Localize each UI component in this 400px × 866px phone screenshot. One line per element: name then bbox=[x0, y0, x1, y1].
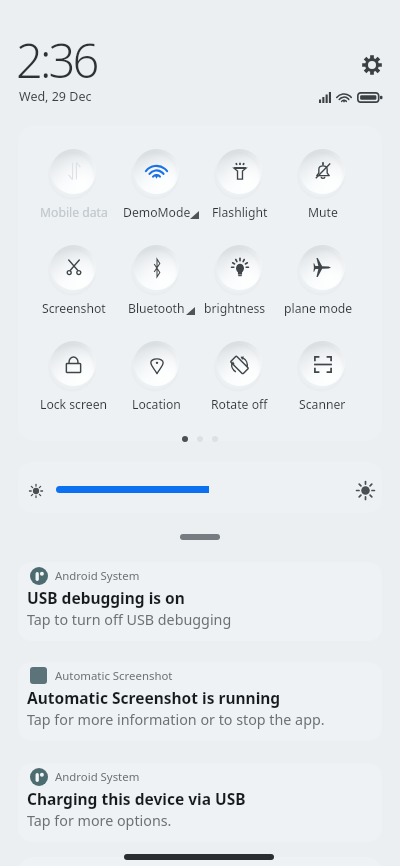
button[interactable]: Rotate off bbox=[198, 338, 281, 413]
staticText: Rotate off bbox=[211, 396, 268, 413]
button[interactable]: Scanner bbox=[281, 338, 364, 413]
button[interactable]: Android System bbox=[18, 763, 382, 842]
staticText: Android System bbox=[55, 568, 140, 584]
staticText: Lock screen bbox=[40, 396, 108, 413]
staticText: Charging this device via USB bbox=[27, 788, 246, 809]
button[interactable]: Automatic Screenshot bbox=[18, 662, 382, 741]
button[interactable]: Mute bbox=[281, 146, 364, 221]
staticText: plane mode bbox=[284, 300, 353, 317]
button[interactable]: Location bbox=[115, 338, 198, 413]
staticText: DemoMode bbox=[123, 204, 191, 221]
staticText: Bluetooth bbox=[128, 300, 185, 317]
button[interactable]: Lock screen bbox=[32, 338, 115, 413]
staticText: Tap for more information or to stop the … bbox=[27, 710, 325, 729]
staticText: Flashlight bbox=[212, 204, 268, 221]
button[interactable]: brightness bbox=[198, 242, 281, 317]
staticText: Tap for more options. bbox=[27, 811, 172, 830]
staticText: Screenshot bbox=[42, 300, 106, 317]
staticText: Location bbox=[132, 396, 181, 413]
staticText: Android System bbox=[55, 769, 140, 785]
staticText: Tap to turn off USB debugging bbox=[27, 610, 232, 629]
staticText: Automatic Screenshot is running bbox=[27, 687, 281, 708]
button[interactable] bbox=[18, 462, 382, 513]
staticText: Automatic Screenshot bbox=[55, 668, 173, 684]
staticText: USB debugging is on bbox=[27, 587, 185, 608]
button[interactable]: Expand bbox=[180, 534, 220, 540]
staticText: Wed, 29 Dec bbox=[19, 88, 92, 105]
button[interactable]: Android System bbox=[18, 562, 382, 641]
button[interactable]: Screenshot bbox=[32, 242, 115, 317]
staticText: 2:36 bbox=[16, 28, 97, 92]
button[interactable]: plane mode bbox=[281, 242, 364, 317]
button[interactable]: Bluetooth bbox=[115, 242, 198, 317]
staticText: Mute bbox=[308, 204, 338, 221]
button[interactable]: Mobile data bbox=[32, 146, 115, 221]
button[interactable]: Settings bbox=[354, 47, 390, 83]
button[interactable]: Flashlight bbox=[198, 146, 281, 221]
staticText: Scanner bbox=[299, 396, 346, 413]
staticText: Mobile data bbox=[40, 204, 108, 221]
button[interactable]: DemoMode bbox=[115, 146, 198, 221]
staticText: brightness bbox=[204, 300, 266, 317]
